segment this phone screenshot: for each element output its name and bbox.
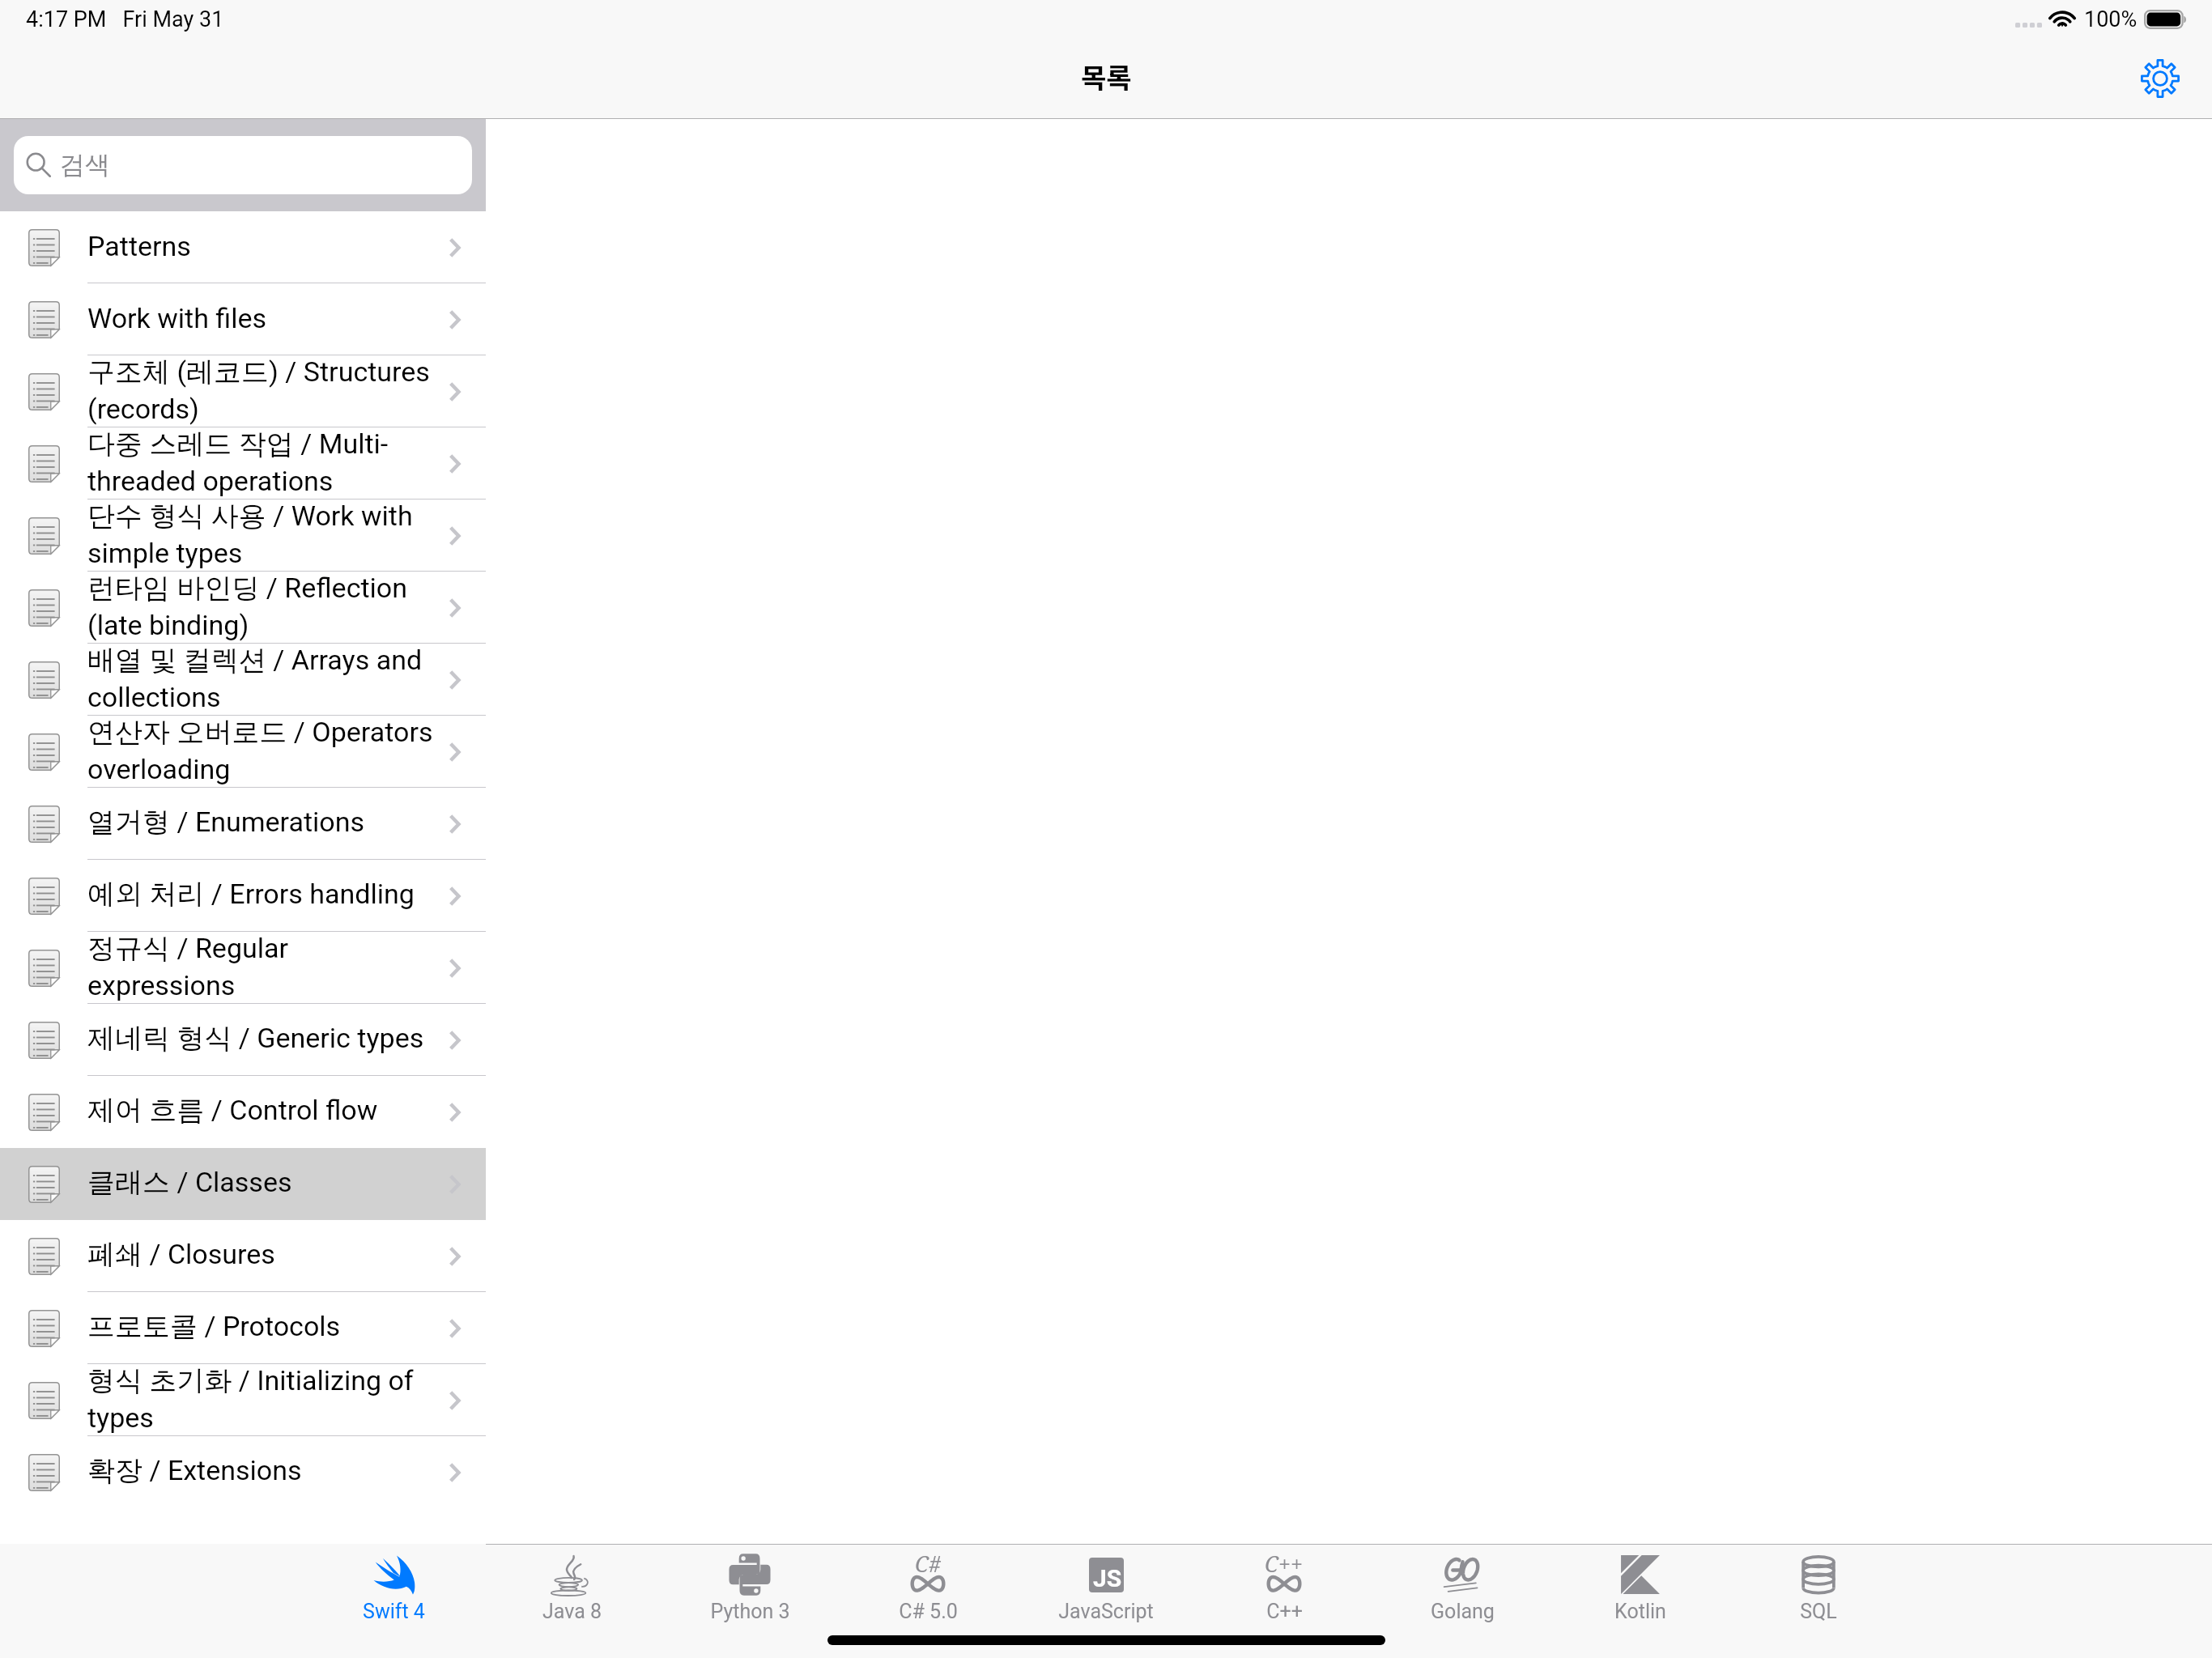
button[interactable]: C#: [839, 1544, 1017, 1658]
button[interactable]: JS: [1017, 1544, 1195, 1658]
button[interactable]: Python 3: [661, 1544, 839, 1658]
button[interactable]: 예외 처리 / Errors handling: [0, 860, 486, 932]
button[interactable]: 구조체 (레코드) / Structures (records): [0, 355, 486, 427]
button[interactable]: 제네릭 형식 / Generic types: [0, 1004, 486, 1076]
staticText: 연산자 오버로드 / Operators overloading: [87, 715, 437, 785]
button[interactable]: 폐쇄 / Closures: [0, 1220, 486, 1292]
staticText: 형식 초기화 / Initializing of types: [87, 1363, 437, 1434]
staticText: 배열 및 컬렉션 / Arrays and collections: [87, 643, 437, 713]
staticText: 100%: [2084, 6, 2138, 32]
button[interactable]: 단수 형식 사용 / Work with simple types: [0, 500, 486, 572]
button[interactable]: Swift 4: [304, 1544, 483, 1658]
button[interactable]: 제어 흐름 / Control flow: [0, 1076, 486, 1148]
staticText: 열거형 / Enumerations: [87, 805, 437, 840]
staticText: 정규식 / Regular expressions: [87, 931, 437, 1001]
staticText: 4:17 PM Fri May 31: [26, 6, 224, 32]
button[interactable]: Kotlin: [1551, 1544, 1729, 1658]
staticText: Python 3: [710, 1600, 790, 1623]
button[interactable]: 검색: [14, 136, 472, 194]
button[interactable]: Work with files: [0, 283, 486, 355]
staticText: 런타임 바인딩 / Reflection (late binding): [87, 571, 437, 641]
button[interactable]: 정규식 / Regular expressions: [0, 932, 486, 1004]
button[interactable]: 확장 / Extensions: [0, 1436, 486, 1508]
button[interactable]: 형식 초기화 / Initializing of types: [0, 1364, 486, 1436]
staticText: 프로토콜 / Protocols: [87, 1309, 437, 1344]
button[interactable]: C++: [1195, 1544, 1373, 1658]
staticText: SQL: [1800, 1600, 1837, 1623]
staticText: 목록: [1081, 57, 1132, 96]
button[interactable]: Patterns: [0, 211, 486, 283]
button[interactable]: 연산자 오버로드 / Operators overloading: [0, 716, 486, 788]
staticText: 폐쇄 / Closures: [87, 1237, 437, 1272]
staticText: 제어 흐름 / Control flow: [87, 1093, 437, 1128]
button[interactable]: 배열 및 컬렉션 / Arrays and collections: [0, 644, 486, 716]
staticText: Work with files: [87, 302, 437, 334]
staticText: Kotlin: [1614, 1600, 1666, 1623]
button[interactable]: 런타임 바인딩 / Reflection (late binding): [0, 572, 486, 644]
staticText: 구조체 (레코드) / Structures (records): [87, 355, 437, 425]
button[interactable]: 프로토콜 / Protocols: [0, 1292, 486, 1364]
staticText: C++: [1266, 1600, 1303, 1623]
staticText: C# 5.0: [899, 1600, 958, 1623]
staticText: 확장 / Extensions: [87, 1453, 437, 1488]
staticText: JavaScript: [1058, 1600, 1154, 1623]
button[interactable]: 클래스 / Classes: [0, 1148, 486, 1220]
staticText: Golang: [1431, 1600, 1495, 1623]
staticText: 클래스 / Classes: [87, 1165, 437, 1200]
staticText: 검색: [60, 149, 110, 181]
button[interactable]: Settings: [2141, 59, 2180, 98]
staticText: C#: [915, 1549, 942, 1579]
button[interactable]: Golang: [1373, 1544, 1551, 1658]
staticText: Patterns: [87, 230, 437, 262]
button[interactable]: 다중 스레드 작업 / Multi-threaded operations: [0, 427, 486, 500]
staticText: C++: [1265, 1549, 1304, 1579]
staticText: Swift 4: [363, 1600, 425, 1623]
button[interactable]: Java 8: [483, 1544, 661, 1658]
button[interactable]: 열거형 / Enumerations: [0, 788, 486, 860]
staticText: 다중 스레드 작업 / Multi-threaded operations: [87, 427, 437, 497]
staticText: 단수 형식 사용 / Work with simple types: [87, 499, 437, 569]
button[interactable]: SQL: [1729, 1544, 1908, 1658]
staticText: 제네릭 형식 / Generic types: [87, 1021, 437, 1056]
staticText: JS: [1093, 1564, 1122, 1592]
staticText: 예외 처리 / Errors handling: [87, 877, 437, 912]
staticText: Java 8: [542, 1600, 602, 1623]
